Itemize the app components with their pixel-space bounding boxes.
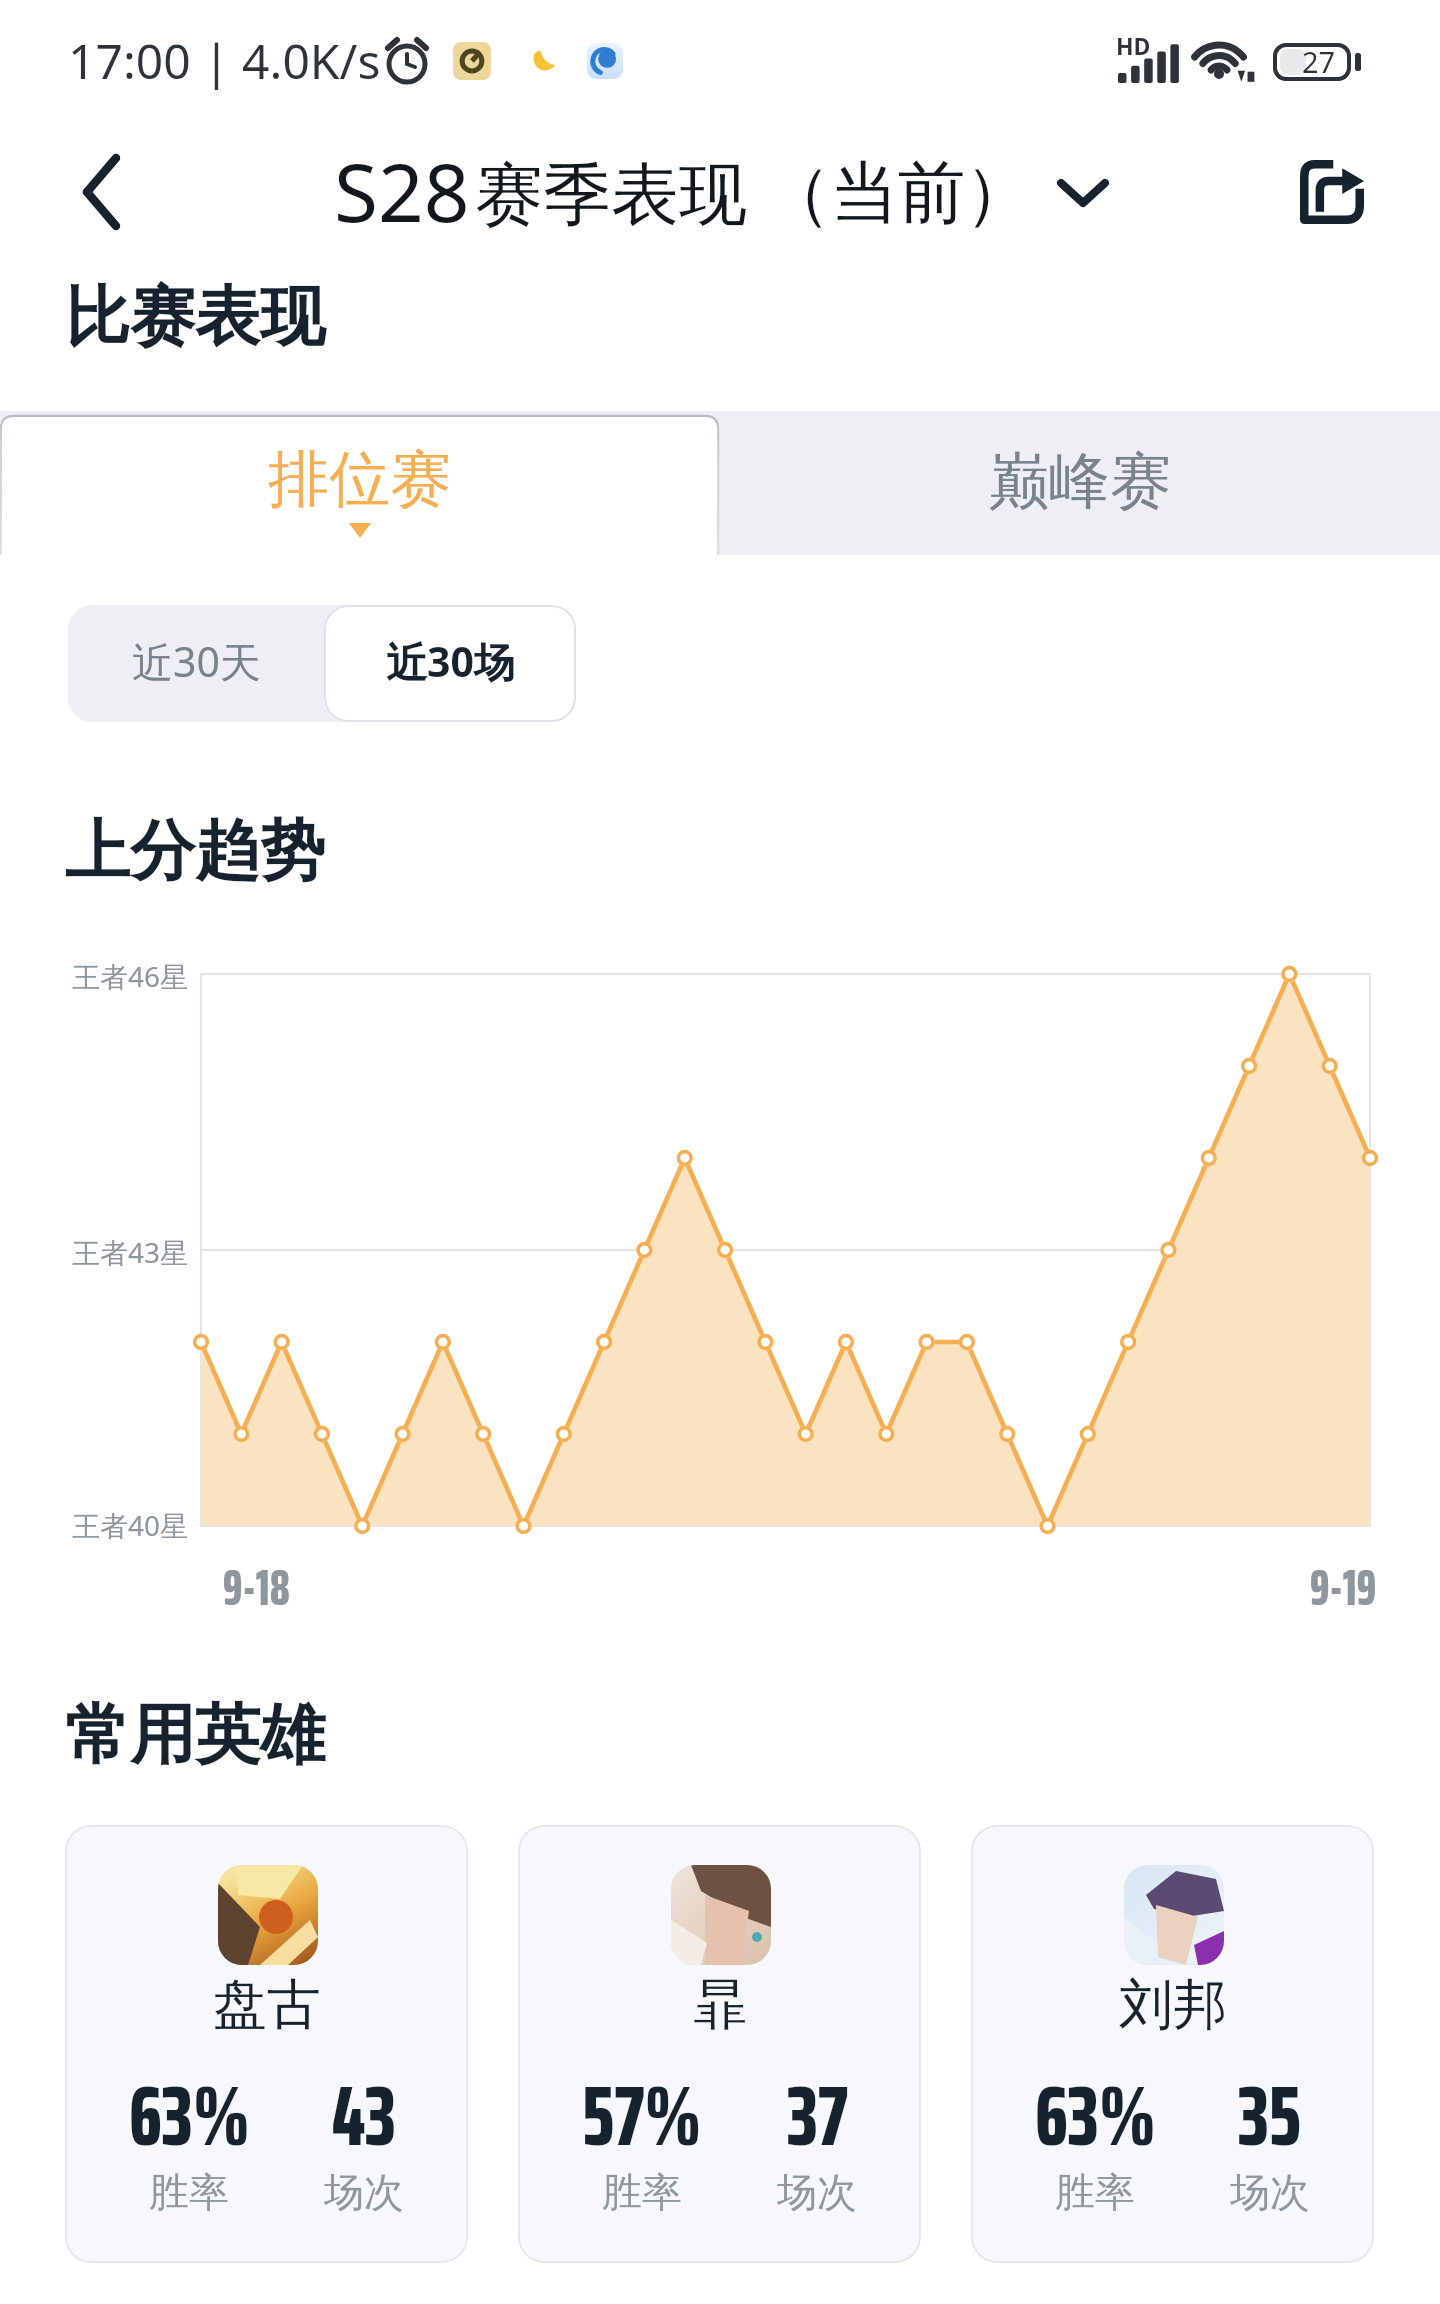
button[interactable]: 暃 (518, 1825, 921, 2263)
staticText: 场次 (324, 2167, 404, 2217)
staticText: 盘古 (213, 1971, 321, 2039)
staticText: 刘邦 (1119, 1971, 1227, 2039)
staticText: 9-19 (1310, 1548, 1377, 1627)
staticText: 63% (1035, 2050, 1156, 2182)
button[interactable]: 盘古 (65, 1825, 468, 2263)
staticText: 37 (787, 2050, 848, 2182)
staticText: 胜率 (602, 2167, 682, 2217)
staticText: 王者46星 (72, 957, 189, 995)
staticText: 场次 (1230, 2167, 1310, 2217)
staticText: 王者40星 (72, 1506, 189, 1544)
button[interactable]: S28 (334, 138, 1010, 247)
staticText: （当前） (764, 151, 1032, 237)
staticText: S28 (334, 136, 470, 245)
staticText: 43 (332, 2050, 396, 2182)
staticText: 近30天 (132, 633, 261, 689)
staticText: 王者43星 (72, 1233, 189, 1271)
staticText: 常用英雄 (65, 1694, 325, 1776)
staticText: 排位赛 (268, 441, 451, 518)
staticText: 近30场 (386, 633, 515, 689)
staticText: 暃 (693, 1971, 747, 2039)
staticText: 27 (1302, 42, 1336, 80)
button[interactable]: Back (54, 146, 150, 238)
button[interactable]: 巅峰赛 (719, 411, 1440, 555)
button[interactable] (0, 415, 719, 555)
staticText: 场次 (777, 2167, 857, 2217)
button[interactable]: 刘邦 (971, 1825, 1374, 2263)
staticText: 9-18 (223, 1548, 290, 1627)
staticText: 35 (1238, 2050, 1302, 2182)
staticText: 赛季表现 (475, 153, 747, 239)
button[interactable]: Share (1278, 138, 1386, 246)
staticText: 57% (582, 2050, 702, 2182)
staticText: HD (1116, 30, 1151, 61)
staticText: 63% (129, 2050, 250, 2182)
staticText: 胜率 (1055, 2167, 1135, 2217)
staticText: 巅峰赛 (988, 443, 1171, 520)
staticText: 比赛表现 (65, 276, 325, 358)
button[interactable]: 近30场 (324, 605, 576, 722)
button[interactable]: 近30天 (68, 605, 324, 722)
staticText: 上分趋势 (65, 810, 325, 892)
staticText: 胜率 (149, 2167, 229, 2217)
staticText: 17:00 | 4.0K/s (68, 28, 381, 93)
